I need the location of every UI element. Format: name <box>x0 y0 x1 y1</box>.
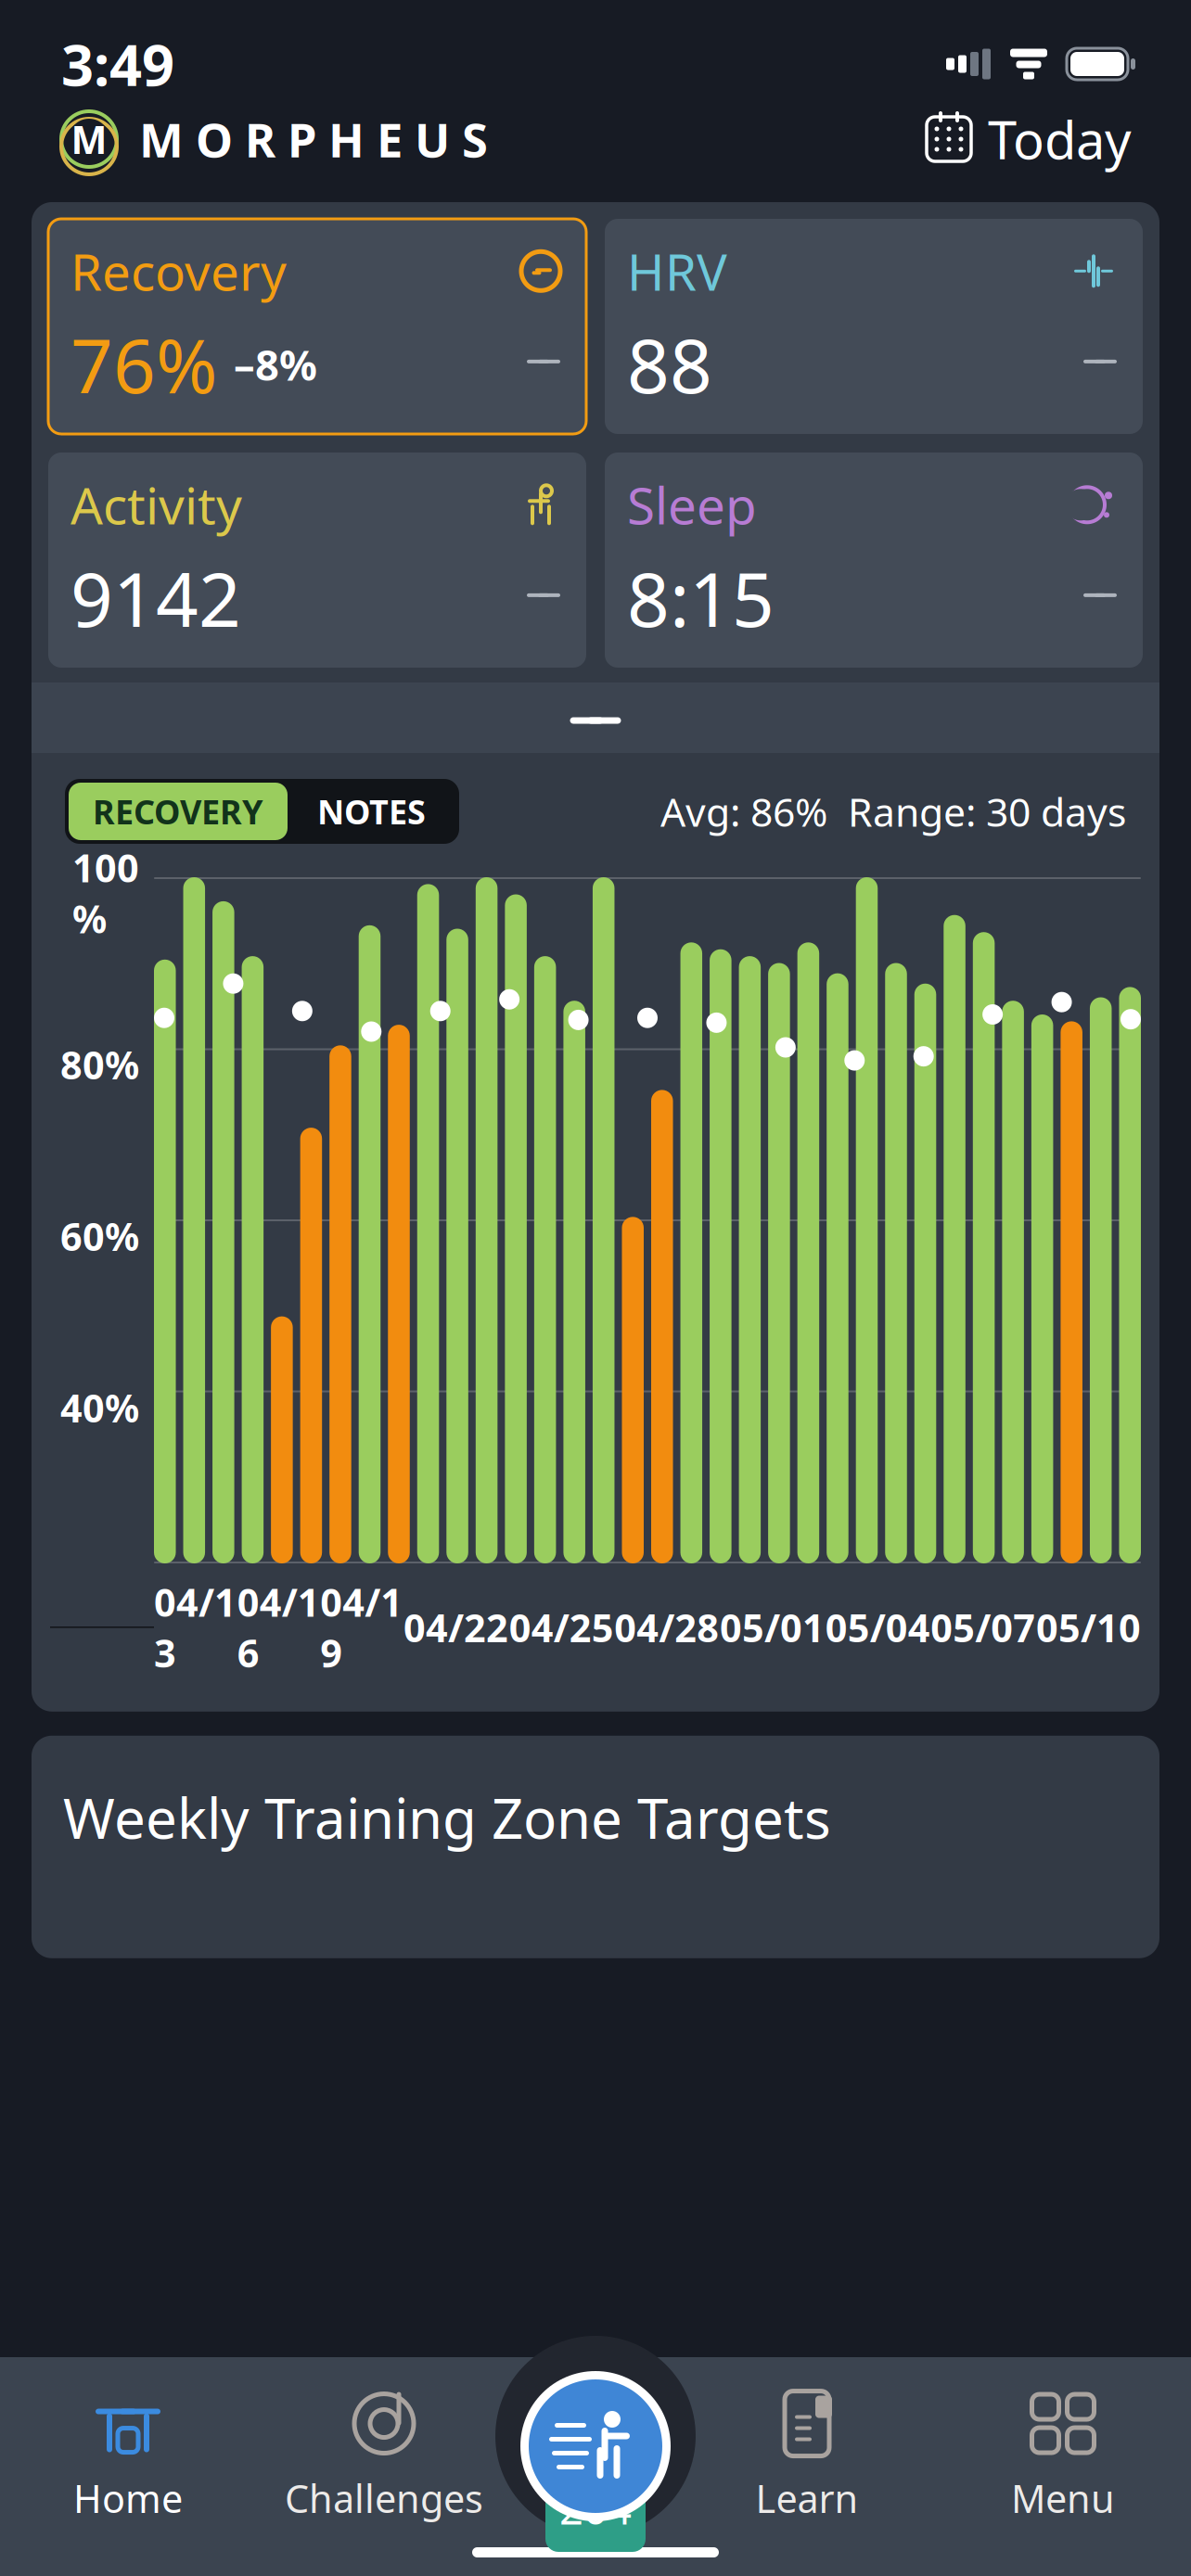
button[interactable]: Collapse <box>32 682 1159 753</box>
staticText: Weekly Training Zone Targets <box>63 1780 831 1854</box>
staticText: Activity <box>70 471 242 538</box>
staticText: 04/22 <box>403 1602 508 1653</box>
staticText: 8:15 <box>627 549 775 647</box>
staticText: 80% <box>60 1039 139 1090</box>
staticText: 76% <box>70 315 217 414</box>
staticText: 05/07 <box>931 1602 1035 1653</box>
button[interactable]: Recovery <box>48 219 586 434</box>
staticText: Menu <box>1011 2473 1115 2524</box>
staticText: 05/01 <box>720 1602 825 1653</box>
staticText: 40% <box>60 1382 139 1433</box>
button[interactable]: Sleep <box>605 453 1143 668</box>
staticText: M O R P H E U S <box>139 108 488 170</box>
staticText: Recovery <box>70 237 287 305</box>
button[interactable]: Menu <box>935 2385 1191 2526</box>
button[interactable]: Home <box>0 2385 256 2526</box>
staticText: 05/04 <box>825 1602 930 1653</box>
staticText: Today <box>988 105 1132 174</box>
staticText: 04/19 <box>320 1576 403 1678</box>
staticText: Sleep <box>627 471 757 538</box>
button[interactable]: RECOVERY <box>69 783 288 840</box>
button[interactable]: Challenges <box>256 2385 512 2526</box>
staticText: RECOVERY <box>93 789 263 834</box>
staticText: –8% <box>234 336 317 392</box>
button[interactable]: HRV <box>605 219 1143 434</box>
staticText: 204 <box>559 2480 632 2536</box>
button[interactable]: Start workout <box>520 2371 671 2521</box>
staticText: 04/25 <box>509 1602 614 1653</box>
staticText: 05/10 <box>1036 1602 1141 1653</box>
staticText: Learn <box>756 2473 858 2524</box>
staticText: HRV <box>627 237 727 305</box>
staticText: 88 <box>627 315 712 414</box>
staticText: 04/13 <box>154 1576 237 1678</box>
staticText: 9142 <box>70 549 241 647</box>
button[interactable]: Activity <box>48 453 586 668</box>
staticText: Avg: 86% Range: 30 days <box>660 785 1126 838</box>
button[interactable]: NOTES <box>288 783 455 840</box>
staticText: 60% <box>60 1211 139 1262</box>
staticText: 04/16 <box>237 1576 320 1678</box>
staticText: NOTES <box>317 789 426 834</box>
staticText: Home <box>73 2473 183 2524</box>
staticText: 100% <box>72 842 139 944</box>
button[interactable]: Today <box>916 95 1141 183</box>
staticText: Challenges <box>285 2473 483 2524</box>
button[interactable]: Learn <box>679 2385 935 2526</box>
staticText: 3:49 <box>61 26 174 102</box>
staticText: 04/28 <box>614 1602 719 1653</box>
staticText: M <box>71 114 107 165</box>
